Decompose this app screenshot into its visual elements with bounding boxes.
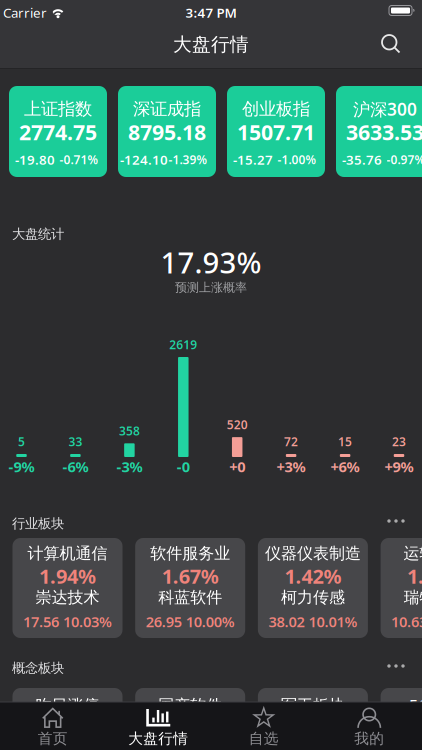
staticText: 深证成指 [133, 98, 201, 120]
staticText: 1.42% [284, 563, 341, 589]
staticText: 2.10% [39, 713, 96, 739]
button[interactable]: More concepts [381, 656, 411, 676]
staticText: 仪器仪表制造 [265, 544, 361, 563]
staticText: 33 [68, 433, 82, 449]
button[interactable]: 深证成指 [118, 86, 216, 177]
button[interactable]: 5G概念 [381, 688, 422, 750]
staticText: 大盘行情 [128, 729, 188, 747]
staticText: 国产软件 [158, 696, 222, 715]
staticText: 3633.53 [346, 118, 422, 146]
button[interactable]: 昨日涨停 [12, 688, 122, 750]
staticText: 创业板指 [242, 98, 310, 120]
staticText: 520 [227, 417, 248, 432]
staticText: 17.56 10.03% [23, 612, 112, 631]
staticText: 3:47 PM [185, 4, 236, 21]
staticText: 崇达技术 [35, 738, 99, 750]
staticText: 26.95 10.00% [146, 612, 235, 631]
staticText: 23 [392, 433, 406, 449]
staticText: 5G概念 [409, 695, 422, 716]
staticText: -15.27 [233, 151, 273, 168]
button[interactable]: 国产软件 [135, 688, 245, 750]
staticText: 38.02 10.01% [268, 612, 357, 631]
button[interactable]: 计算机通信 [12, 538, 122, 638]
button[interactable]: 沪深300 [336, 86, 422, 177]
staticText: 72 [284, 433, 298, 449]
staticText: 上证指数 [24, 98, 92, 120]
staticText: 行业板块 [12, 515, 64, 532]
staticText: 358 [119, 423, 140, 439]
staticText: +9% [384, 457, 413, 476]
staticText: -35.76 [342, 151, 382, 168]
button[interactable]: 软件服务业 [135, 538, 245, 638]
staticText: -3% [116, 457, 142, 476]
staticText: -124.10 [120, 151, 168, 168]
staticText: 1.94% [39, 563, 96, 589]
staticText: 昨日涨停 [35, 696, 99, 715]
staticText: Carrier [3, 4, 47, 21]
staticText: 预测上涨概率 [175, 280, 247, 295]
staticText: +0 [229, 457, 245, 476]
staticText: 我的 [354, 729, 384, 747]
button[interactable]: Search [371, 24, 411, 64]
staticText: 1507.71 [237, 118, 315, 146]
button[interactable]: 运输设备 [381, 538, 422, 638]
staticText: 1.67% [162, 563, 219, 589]
staticText: 5 [18, 433, 25, 449]
staticText: 瑞特股份 [404, 588, 422, 607]
staticText: -0.71% [59, 151, 98, 167]
staticText: 1.88% [162, 713, 219, 739]
staticText: -1.39% [168, 151, 207, 167]
staticText: -1.00% [277, 151, 316, 167]
staticText: 运输设备 [404, 544, 422, 563]
staticText: -0 [177, 457, 190, 476]
staticText: +6% [331, 457, 360, 476]
staticText: +3% [277, 457, 306, 476]
button[interactable]: More sectors [381, 511, 411, 531]
button[interactable]: 上证指数 [9, 86, 107, 177]
staticText: 大盘行情 [173, 33, 249, 56]
staticText: 计算机通信 [27, 544, 107, 563]
staticText: -9% [8, 457, 34, 476]
staticText: 17.93% [160, 242, 261, 281]
button[interactable]: 我的 [327, 703, 411, 749]
button[interactable]: 创业板指 [227, 86, 325, 177]
staticText: 2619 [169, 336, 197, 352]
button[interactable]: 自选 [222, 703, 306, 749]
staticText: 2774.75 [19, 118, 97, 146]
staticText: 军工板块 [281, 696, 345, 715]
staticText: 自选 [249, 729, 279, 747]
staticText: 沪深300 [353, 97, 417, 120]
staticText: 首页 [38, 729, 68, 747]
staticText: -0.97% [386, 151, 422, 167]
button[interactable]: 大盘行情 [116, 703, 200, 749]
staticText: 大盘统计 [12, 226, 64, 242]
staticText: 软件服务业 [150, 544, 230, 563]
staticText: 科蓝软件 [158, 588, 222, 607]
staticText: -6% [62, 457, 88, 476]
staticText: 崇达技术 [35, 588, 99, 607]
staticText: 15 [338, 433, 352, 449]
staticText: 柯力传感 [281, 588, 345, 607]
button[interactable]: 军工板块 [258, 688, 368, 750]
button[interactable]: 仪器仪表制造 [258, 538, 368, 638]
staticText: 科蓝软件 [158, 738, 222, 750]
staticText: -19.80 [15, 151, 55, 168]
staticText: 概念板块 [12, 660, 64, 676]
staticText: 1.38% [407, 563, 422, 589]
staticText: 10.63 10.02% [391, 612, 422, 631]
staticText: 8795.18 [128, 118, 206, 146]
button[interactable]: 首页 [11, 703, 95, 749]
